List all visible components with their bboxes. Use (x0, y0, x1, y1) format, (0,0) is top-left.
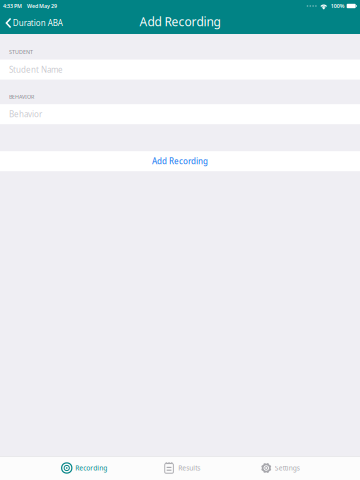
staticText: Duration ABA (13, 18, 63, 28)
staticText: Add Recording (152, 156, 208, 166)
staticText: Wed May 29 (27, 2, 57, 10)
staticText: 100% (331, 2, 345, 10)
button[interactable]: Duration ABA (0, 12, 68, 34)
button[interactable]: Student Name (0, 60, 360, 80)
staticText: Settings (275, 464, 300, 472)
staticText: Results (178, 464, 200, 472)
button[interactable]: Settings (231, 456, 329, 480)
button[interactable]: Results (133, 456, 231, 480)
staticText: Add Recording (139, 13, 220, 29)
staticText: 4:33 PM (3, 2, 22, 10)
staticText: BEHAVIOR (9, 93, 34, 100)
button[interactable]: Behavior (0, 104, 360, 124)
staticText: STUDENT (9, 48, 33, 56)
staticText: Recording (75, 464, 107, 472)
button[interactable]: Recording (35, 456, 133, 480)
staticText: Behavior (9, 109, 42, 119)
button[interactable]: Add Recording (0, 151, 360, 171)
staticText: Student Name (9, 64, 63, 75)
